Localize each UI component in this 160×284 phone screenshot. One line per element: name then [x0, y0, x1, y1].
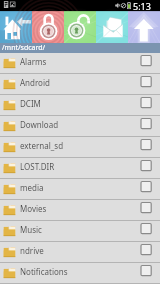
button[interactable]: Lock: [32, 11, 64, 43]
staticText: external_sd: [20, 140, 64, 151]
button[interactable]: Select media: [139, 180, 153, 194]
button[interactable]: Download: [0, 116, 160, 136]
button[interactable]: Mail: [96, 11, 128, 43]
button[interactable]: Go up: [128, 11, 160, 43]
button[interactable]: Select Movies: [139, 201, 153, 215]
staticText: media: [20, 182, 44, 193]
staticText: /mnt/sdcard/: [2, 43, 46, 53]
button[interactable]: LOST.DIR: [0, 158, 160, 178]
button[interactable]: media: [0, 179, 160, 199]
button[interactable]: Notifications: [0, 263, 160, 283]
button[interactable]: DCIM: [0, 95, 160, 115]
button[interactable]: Android: [0, 74, 160, 94]
button[interactable]: external_sd: [0, 137, 160, 157]
staticText: LOST.DIR: [20, 161, 55, 172]
staticText: ndrive: [20, 245, 44, 256]
button[interactable]: Alarms: [0, 53, 160, 73]
button[interactable]: Select external_sd: [139, 138, 153, 152]
button[interactable]: Select Notifications: [139, 264, 153, 278]
staticText: Alarms: [20, 56, 47, 67]
button[interactable]: Select Download: [139, 117, 153, 131]
button[interactable]: Select Alarms: [139, 54, 153, 68]
staticText: 5:13: [133, 0, 151, 11]
button[interactable]: Music: [0, 221, 160, 241]
staticText: DCIM: [20, 98, 41, 109]
button[interactable]: ndrive: [0, 242, 160, 262]
staticText: Music: [20, 224, 42, 235]
button[interactable]: Home: [0, 11, 32, 43]
button[interactable]: Select Music: [139, 222, 153, 236]
staticText: Download: [20, 119, 59, 130]
staticText: Android: [20, 77, 50, 88]
button[interactable]: Select ndrive: [139, 243, 153, 257]
staticText: Notifications: [20, 266, 68, 277]
button[interactable]: Select Android: [139, 75, 153, 89]
button[interactable]: Unlock: [64, 11, 96, 43]
button[interactable]: Select LOST.DIR: [139, 159, 153, 173]
button[interactable]: Movies: [0, 200, 160, 220]
staticText: Movies: [20, 203, 47, 214]
button[interactable]: Select DCIM: [139, 96, 153, 110]
